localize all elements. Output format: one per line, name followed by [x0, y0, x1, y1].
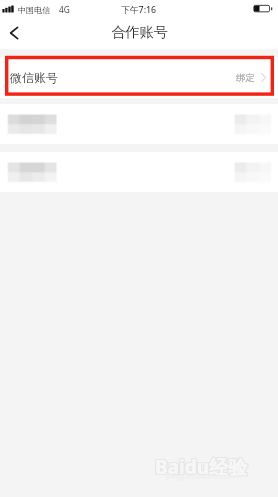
staticText: 合作账号 — [111, 23, 168, 41]
staticText: Baidu经验 — [155, 454, 248, 480]
staticText: 中国电信 — [18, 5, 51, 15]
staticText: 绑定 — [236, 72, 255, 84]
staticText: 微信账号 — [10, 70, 58, 85]
staticText: Baidu经验 — [154, 454, 247, 480]
staticText: Baidu经验 — [155, 455, 248, 481]
button[interactable]: Back — [0, 20, 28, 49]
staticText: jingyan.baidu.com — [166, 471, 236, 481]
staticText: Baidu经验 — [154, 453, 247, 479]
button[interactable] — [0, 152, 278, 192]
staticText: Baidu经验 — [156, 454, 249, 480]
staticText: Baidu经验 — [155, 453, 248, 479]
button[interactable] — [0, 104, 278, 144]
button[interactable]: 微信账号 — [0, 57, 278, 98]
staticText: Baidu经验 — [156, 455, 249, 481]
staticText: 4G — [59, 4, 70, 15]
staticText: Baidu经验 — [156, 453, 249, 479]
staticText: 下午7:16 — [121, 4, 157, 16]
staticText: Baidu经验 — [154, 455, 247, 481]
